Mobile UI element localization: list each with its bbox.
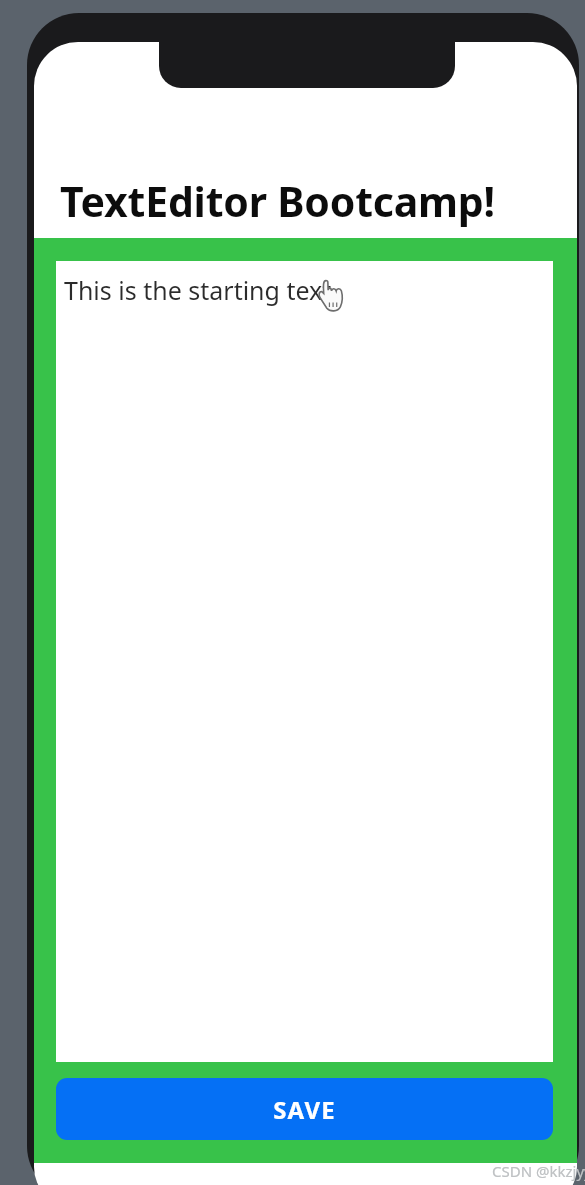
- staticText: This is the starting text.: [64, 273, 339, 307]
- staticText: SAVE: [273, 1093, 336, 1126]
- button[interactable]: This is the starting text.: [56, 261, 553, 1062]
- staticText: CSDN @kkzjyy: [492, 1161, 585, 1181]
- staticText: TextEditor Bootcamp!: [60, 173, 495, 229]
- button[interactable]: SAVE: [56, 1078, 553, 1140]
